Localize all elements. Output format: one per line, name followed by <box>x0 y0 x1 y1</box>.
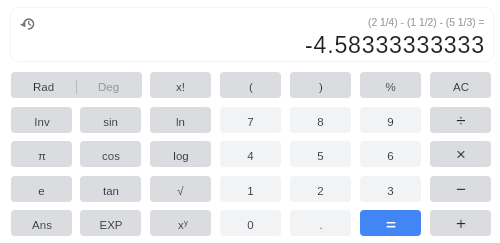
staticText: % <box>385 81 396 94</box>
button[interactable]: 3 <box>360 176 421 202</box>
staticText: y <box>184 218 188 227</box>
staticText: ) <box>319 81 323 94</box>
button[interactable]: 5 <box>290 141 351 167</box>
button[interactable]: % <box>360 72 421 98</box>
button[interactable]: − <box>430 176 491 202</box>
staticText: × <box>456 145 466 164</box>
button[interactable]: 7 <box>220 107 281 133</box>
staticText: 6 <box>387 150 394 163</box>
button[interactable]: = <box>360 210 421 236</box>
button[interactable]: + <box>430 210 491 236</box>
staticText: x <box>178 219 184 232</box>
button[interactable]: 6 <box>360 141 421 167</box>
button[interactable]: 8 <box>290 107 351 133</box>
staticText: x! <box>176 81 185 94</box>
staticText: AC <box>453 81 469 94</box>
button[interactable]: e <box>11 176 72 202</box>
button[interactable]: x <box>150 210 211 236</box>
button[interactable]: log <box>150 141 211 167</box>
button[interactable]: √ <box>150 176 211 202</box>
staticText: 1 <box>247 185 254 198</box>
staticText: Ans <box>32 219 52 232</box>
staticText: (2 1/4) - (1 1/2) - (5 1/3) = <box>368 17 485 29</box>
staticText: − <box>456 180 466 199</box>
staticText: ( <box>249 81 253 94</box>
staticText: 8 <box>317 116 324 129</box>
staticText: Rad <box>33 81 55 94</box>
button[interactable]: × <box>430 141 491 167</box>
staticText: 2 <box>317 185 324 198</box>
button[interactable]: 0 <box>220 210 281 236</box>
button[interactable]: 1 <box>220 176 281 202</box>
button[interactable]: ) <box>290 72 351 98</box>
button[interactable]: π <box>11 141 72 167</box>
button[interactable]: History <box>14 11 40 37</box>
button[interactable]: EXP <box>80 210 141 236</box>
staticText: log <box>173 150 189 163</box>
button[interactable]: AC <box>430 72 491 98</box>
button[interactable]: tan <box>80 176 141 202</box>
button[interactable]: 4 <box>220 141 281 167</box>
button[interactable]: x! <box>150 72 211 98</box>
staticText: = <box>386 215 396 234</box>
staticText: -4.58333333333 <box>305 32 485 58</box>
staticText: cos <box>102 150 120 163</box>
staticText: √ <box>177 185 184 198</box>
button[interactable]: 9 <box>360 107 421 133</box>
staticText: 3 <box>387 185 394 198</box>
staticText: + <box>456 214 466 233</box>
staticText: tan <box>103 185 119 198</box>
staticText: ÷ <box>456 111 466 130</box>
staticText: e <box>38 185 45 198</box>
staticText: 7 <box>247 116 254 129</box>
staticText: π <box>38 150 46 163</box>
staticText: . <box>319 219 323 232</box>
staticText: 4 <box>247 150 254 163</box>
button[interactable]: Rad <box>11 72 76 98</box>
staticText: 9 <box>387 116 394 129</box>
button[interactable]: ln <box>150 107 211 133</box>
button[interactable]: ( <box>220 72 281 98</box>
button[interactable]: 2 <box>290 176 351 202</box>
button[interactable]: Ans <box>11 210 72 236</box>
staticText: EXP <box>99 219 123 232</box>
staticText: 0 <box>247 219 254 232</box>
button[interactable]: Inv <box>11 107 72 133</box>
button[interactable]: ÷ <box>430 107 491 133</box>
staticText: Inv <box>34 116 50 129</box>
staticText: ln <box>176 116 185 129</box>
staticText: sin <box>103 116 118 129</box>
button[interactable]: sin <box>80 107 141 133</box>
button[interactable]: Deg <box>76 72 141 98</box>
staticText: 5 <box>317 150 324 163</box>
button[interactable]: . <box>290 210 351 236</box>
staticText: Deg <box>98 81 120 94</box>
button[interactable]: cos <box>80 141 141 167</box>
